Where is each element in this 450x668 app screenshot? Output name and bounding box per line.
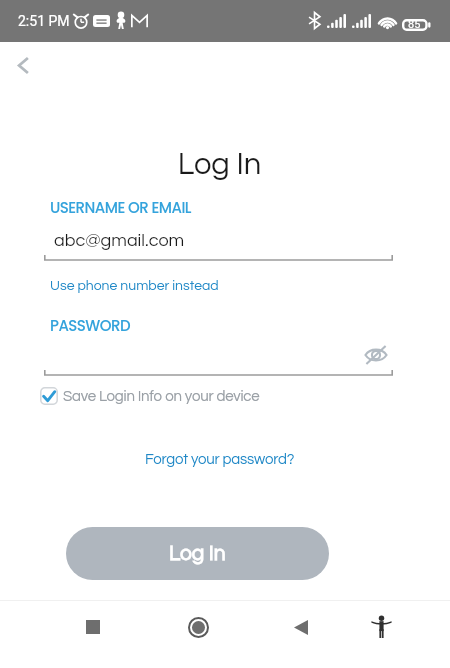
button[interactable]: Accessibility [357,603,405,651]
button[interactable]: Home [174,603,222,651]
staticText: 2:51 PM [18,13,70,29]
button[interactable]: Show password [360,339,392,371]
staticText: Save Login Info on your device [63,389,260,404]
button[interactable]: Recent apps [69,603,117,651]
staticText: Log In [44,149,395,181]
staticText: PASSWORD [50,315,130,336]
button[interactable]: Forgot your password? [44,452,395,467]
button[interactable]: Back [277,603,325,651]
button[interactable]: Back [5,47,41,83]
button[interactable]: Use phone number instead [50,279,219,293]
button[interactable]: Save Login Info on your device [40,387,260,405]
staticText: USERNAME OR EMAIL [50,197,191,218]
staticText: abc@gmail.com [54,231,185,250]
staticText: Log In [169,543,226,565]
button[interactable]: Log In [66,527,329,580]
staticText: 85 [408,18,421,30]
